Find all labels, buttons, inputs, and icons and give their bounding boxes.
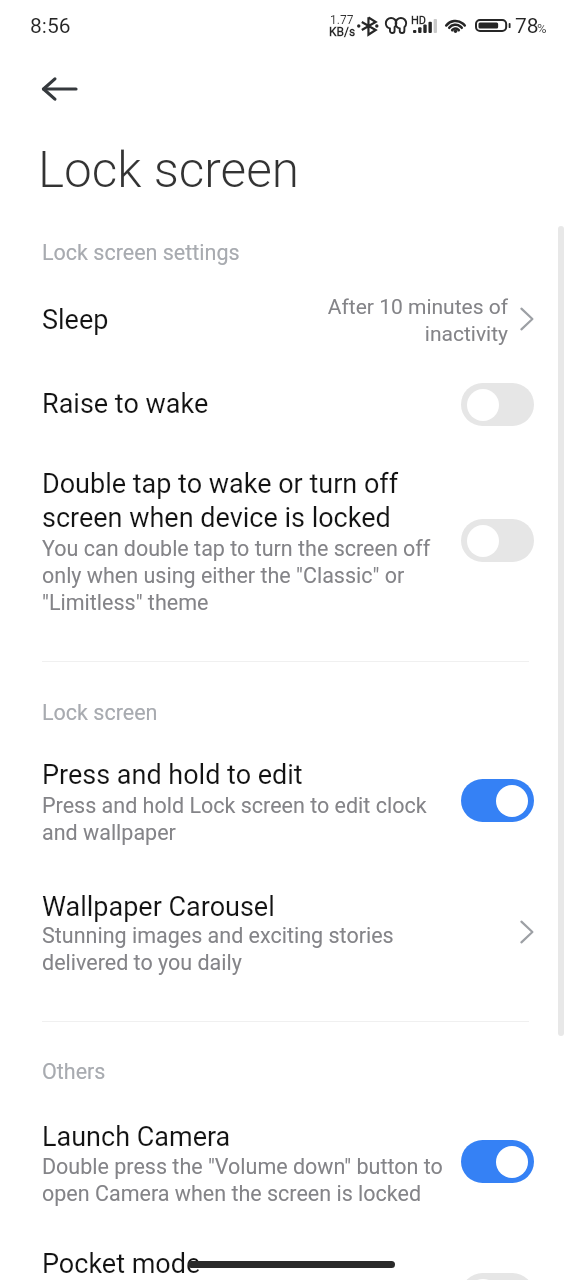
button[interactable]: Switch on: [461, 1140, 534, 1183]
staticText: HD: [411, 14, 427, 27]
staticText: %: [537, 21, 547, 36]
staticText: Launch Camera: [42, 1121, 452, 1153]
staticText: Double tap to wake or turn off screen wh…: [42, 468, 452, 533]
staticText: Double press the "Volume down" button to…: [42, 1154, 452, 1207]
staticText: Wallpaper Carousel: [42, 891, 452, 923]
button[interactable]: Switch off: [461, 383, 534, 426]
staticText: 1.77: [330, 13, 354, 27]
staticText: Press and hold Lock screen to edit clock…: [42, 793, 452, 846]
staticText: Others: [42, 1059, 442, 1084]
staticText: Lock screen: [38, 141, 438, 199]
staticText: After 10 minutes of inactivity: [280, 295, 508, 346]
staticText: KB/s: [329, 25, 356, 39]
button[interactable]: Switch on: [461, 779, 534, 822]
staticText: 8:56: [30, 14, 71, 39]
button[interactable]: Switch off: [461, 519, 534, 562]
button[interactable]: Switch off: [461, 1273, 534, 1280]
staticText: Pocket mode: [42, 1248, 452, 1280]
staticText: Raise to wake: [42, 388, 452, 420]
staticText: You can double tap to turn the screen of…: [42, 536, 452, 616]
staticText: Lock screen: [42, 700, 442, 725]
button[interactable]: Back: [29, 59, 89, 119]
staticText: Stunning images and exciting stories del…: [42, 923, 452, 976]
staticText: 78: [515, 14, 539, 39]
staticText: Press and hold to edit: [42, 759, 452, 791]
staticText: Sleep: [42, 304, 242, 336]
staticText: Lock screen settings: [42, 240, 442, 265]
